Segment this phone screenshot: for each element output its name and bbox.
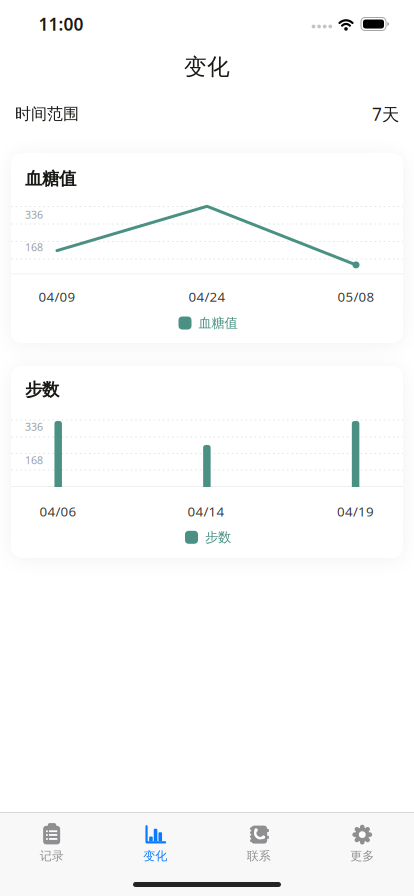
staticText: 168 [25,453,43,467]
staticText: 336 [25,208,43,222]
staticText: 更多 [350,849,374,863]
button[interactable]: 联系 [207,812,310,871]
staticText: 04/24 [188,288,225,305]
button[interactable]: 变化 [103,812,207,871]
staticText: 336 [25,419,43,434]
staticText: 04/06 [39,502,76,520]
staticText: 变化 [143,849,167,863]
staticText: 时间范围 [15,104,79,124]
button[interactable]: 记录 [0,812,103,871]
staticText: 血糖值 [25,168,76,189]
staticText: 04/09 [38,288,75,305]
staticText: 04/14 [187,502,224,520]
staticText: 7天 [372,102,399,125]
staticText: 05/08 [337,288,374,305]
staticText: 血糖值 [198,315,237,331]
staticText: 04/19 [337,502,374,520]
staticText: 步数 [205,529,231,545]
staticText: 11:00 [38,12,83,35]
staticText: 步数 [25,379,59,400]
staticText: 联系 [247,849,271,863]
staticText: 记录 [40,849,64,863]
button[interactable]: 7天 [372,102,399,125]
button[interactable]: 更多 [310,812,414,871]
staticText: 168 [25,240,43,254]
staticText: 变化 [184,53,230,81]
